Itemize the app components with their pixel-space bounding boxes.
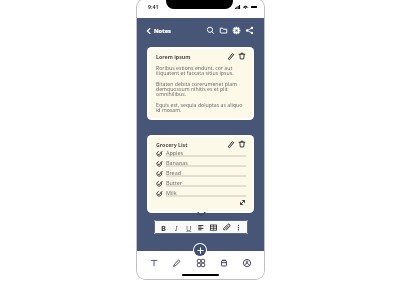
staticText: U <box>186 223 192 232</box>
staticText: Lorem ipsum <box>156 53 227 60</box>
button[interactable]: Back <box>146 27 171 35</box>
button[interactable]: Bread <box>156 168 246 178</box>
staticText: Apples <box>166 149 184 156</box>
button[interactable]: More <box>234 223 243 232</box>
button[interactable]: Lorem ipsum <box>149 49 252 118</box>
staticText: Grocery List <box>156 141 227 148</box>
button[interactable]: Save <box>219 258 229 268</box>
button[interactable]: Profile <box>242 258 252 268</box>
other: Back <box>146 28 151 34</box>
button[interactable]: I <box>172 223 181 232</box>
button[interactable]: Draw <box>172 258 182 268</box>
button[interactable]: Attach <box>222 223 231 232</box>
button[interactable]: Expand <box>239 199 246 206</box>
button[interactable]: Table <box>209 223 218 232</box>
staticText: Roribus estions endunt, cor aut iliquate… <box>156 64 246 77</box>
button[interactable]: Align <box>197 223 206 232</box>
button[interactable]: Edit <box>227 140 235 148</box>
staticText: B <box>161 223 166 232</box>
button[interactable]: Grid <box>196 258 206 268</box>
button[interactable]: Grocery List <box>149 137 252 211</box>
button[interactable]: B <box>159 223 168 232</box>
staticText: Bread <box>166 169 182 176</box>
staticText: Notes <box>154 27 171 35</box>
button[interactable]: Search <box>206 26 215 35</box>
staticText: Bitaten debita corerumenet plam demquoss… <box>156 80 246 98</box>
button[interactable]: Share <box>245 26 254 35</box>
button[interactable]: U <box>184 223 193 232</box>
staticText: Milk <box>166 189 177 196</box>
staticText: 9:41 <box>148 3 159 10</box>
button[interactable]: Add note <box>194 244 206 256</box>
button[interactable]: Delete <box>238 140 246 148</box>
button[interactable]: Folders <box>219 26 228 35</box>
staticText: Equis est, sequia doluptas as aliquo id … <box>156 101 246 114</box>
button[interactable]: Butter <box>156 178 246 188</box>
button[interactable]: Edit <box>227 52 235 60</box>
staticText: Bananas <box>166 159 188 166</box>
staticText: Butter <box>166 179 182 186</box>
button[interactable]: Apples <box>156 148 246 158</box>
button[interactable]: Bananas <box>156 158 246 168</box>
button[interactable]: Collapse <box>196 209 206 219</box>
button[interactable]: Delete <box>238 52 246 60</box>
button[interactable]: Text <box>149 258 159 268</box>
button[interactable]: Settings <box>232 26 241 35</box>
button[interactable]: Milk <box>156 188 246 198</box>
staticText: I <box>175 223 178 232</box>
